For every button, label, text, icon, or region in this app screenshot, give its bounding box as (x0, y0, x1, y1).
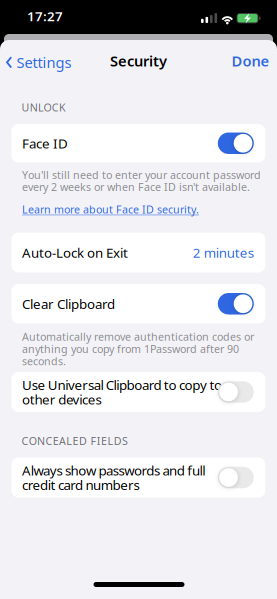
staticText: Learn more about Face ID security. (22, 202, 199, 217)
staticText: credit card numbers (22, 476, 140, 494)
staticText: Automatically remove authentication code… (22, 330, 254, 344)
button[interactable]: Done (231, 51, 269, 71)
staticText: Auto-Lock on Exit (22, 244, 128, 261)
button[interactable]: Always show passwords and full (11, 457, 265, 497)
staticText: other devices (22, 390, 101, 408)
staticText: Settings (16, 53, 71, 72)
staticText: Always show passwords and full (22, 461, 205, 479)
staticText: UNLOCK (21, 100, 66, 114)
button[interactable]: Clear Clipboard (11, 284, 265, 323)
staticText: Clear Clipboard (22, 295, 115, 313)
button[interactable]: Back to Settings (6, 53, 71, 72)
button[interactable]: Learn more about Face ID security. (22, 202, 199, 217)
staticText: CONCEALED FIELDS (21, 434, 128, 448)
staticText: 2 minutes (193, 244, 254, 261)
button[interactable]: Face ID (11, 124, 265, 162)
staticText: Use Universal Clipboard to copy to (22, 376, 222, 394)
staticText: Done (231, 51, 269, 71)
staticText: 17:27 (27, 7, 63, 25)
button[interactable]: Auto-Lock on Exit (11, 232, 265, 272)
staticText: You'll still need to enter your account … (22, 168, 261, 182)
staticText: every 2 weeks or when Face ID isn't avai… (22, 180, 250, 194)
staticText: Security (110, 51, 167, 71)
staticText: Face ID (22, 134, 68, 152)
staticText: seconds. (22, 354, 66, 368)
staticText: anything you copy from 1Password after 9… (22, 342, 239, 356)
button[interactable]: Use Universal Clipboard to copy to (11, 372, 265, 412)
